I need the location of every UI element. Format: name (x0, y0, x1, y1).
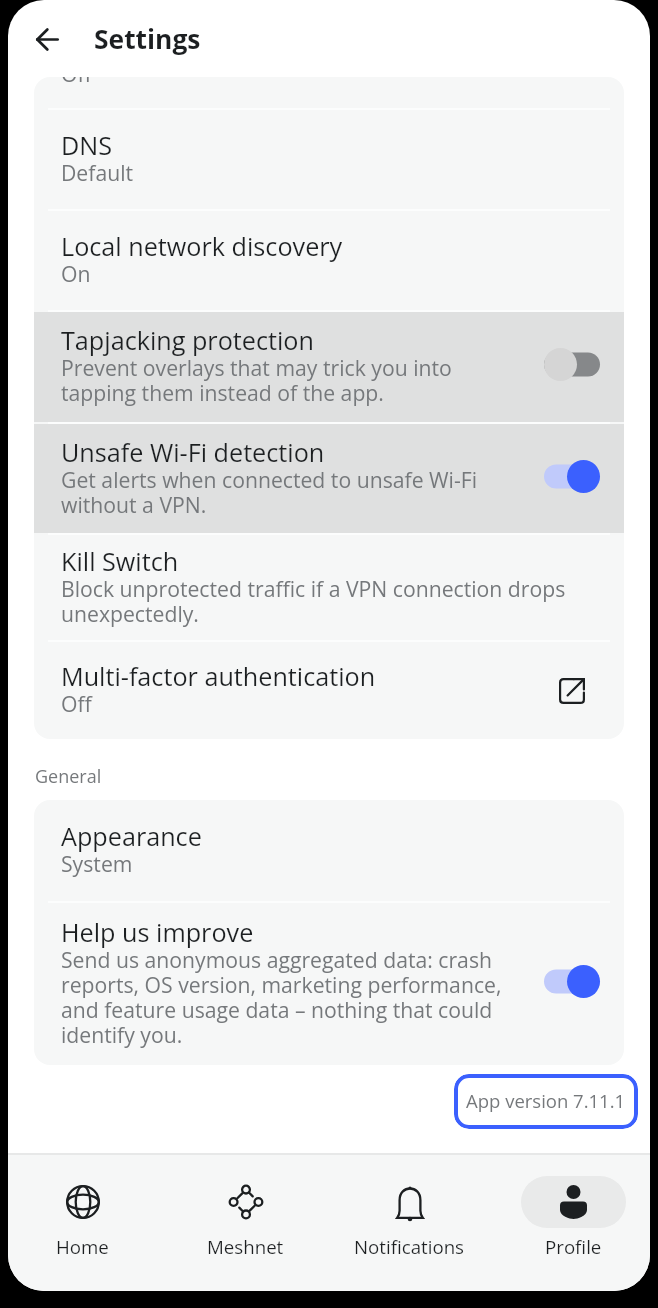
staticText: General (35, 767, 102, 787)
staticText: Home (56, 1238, 109, 1259)
button[interactable]: DNS (34, 110, 624, 209)
button[interactable]: Disabled (534, 340, 610, 388)
staticText: Off (61, 77, 92, 87)
button[interactable]: Multi-factor authentication (34, 642, 624, 739)
button[interactable]: Tapjacking protection (34, 312, 624, 422)
staticText: Settings (94, 25, 201, 55)
button[interactable]: Unsafe Wi-Fi detection (34, 424, 624, 533)
button[interactable]: Appearance (34, 800, 624, 901)
button[interactable]: Off (34, 77, 624, 108)
staticText: Block unprotected traffic if a VPN conne… (61, 577, 566, 627)
staticText: Profile (545, 1238, 602, 1259)
staticText: Tapjacking protection (61, 328, 314, 356)
staticText: Kill Switch (61, 549, 179, 577)
staticText: Prevent overlays that may trick you into… (61, 356, 452, 406)
button[interactable]: App version 7.11.1 (454, 1074, 638, 1129)
staticText: Local network discovery (61, 234, 343, 262)
button[interactable]: Help us improve (34, 903, 624, 1065)
staticText: Appearance (61, 824, 202, 852)
staticText: Off (61, 692, 92, 717)
staticText: Meshnet (207, 1238, 284, 1259)
staticText: Default (61, 161, 134, 186)
staticText: Help us improve (61, 920, 254, 948)
button[interactable]: Enabled (534, 957, 610, 1005)
button[interactable]: Open external link (548, 667, 596, 715)
button[interactable]: Enabled (534, 452, 610, 500)
staticText: App version 7.11.1 (466, 1091, 626, 1113)
button[interactable]: Local network discovery (34, 211, 624, 310)
staticText: System (61, 852, 133, 877)
staticText: Get alerts when connected to unsafe Wi-F… (61, 468, 478, 518)
button[interactable]: Home (8, 1155, 164, 1291)
staticText: Unsafe Wi-Fi detection (61, 440, 325, 468)
staticText: DNS (61, 133, 113, 161)
button[interactable]: Meshnet (164, 1155, 327, 1291)
staticText: Multi-factor authentication (61, 664, 376, 692)
button[interactable]: Kill Switch (34, 535, 624, 640)
staticText: Notifications (354, 1238, 465, 1259)
button[interactable]: Profile (491, 1155, 650, 1291)
button[interactable]: Back (19, 11, 75, 67)
staticText: On (61, 262, 91, 287)
staticText: Send us anonymous aggregated data: crash… (61, 948, 502, 1048)
button[interactable]: Notifications (327, 1155, 491, 1291)
